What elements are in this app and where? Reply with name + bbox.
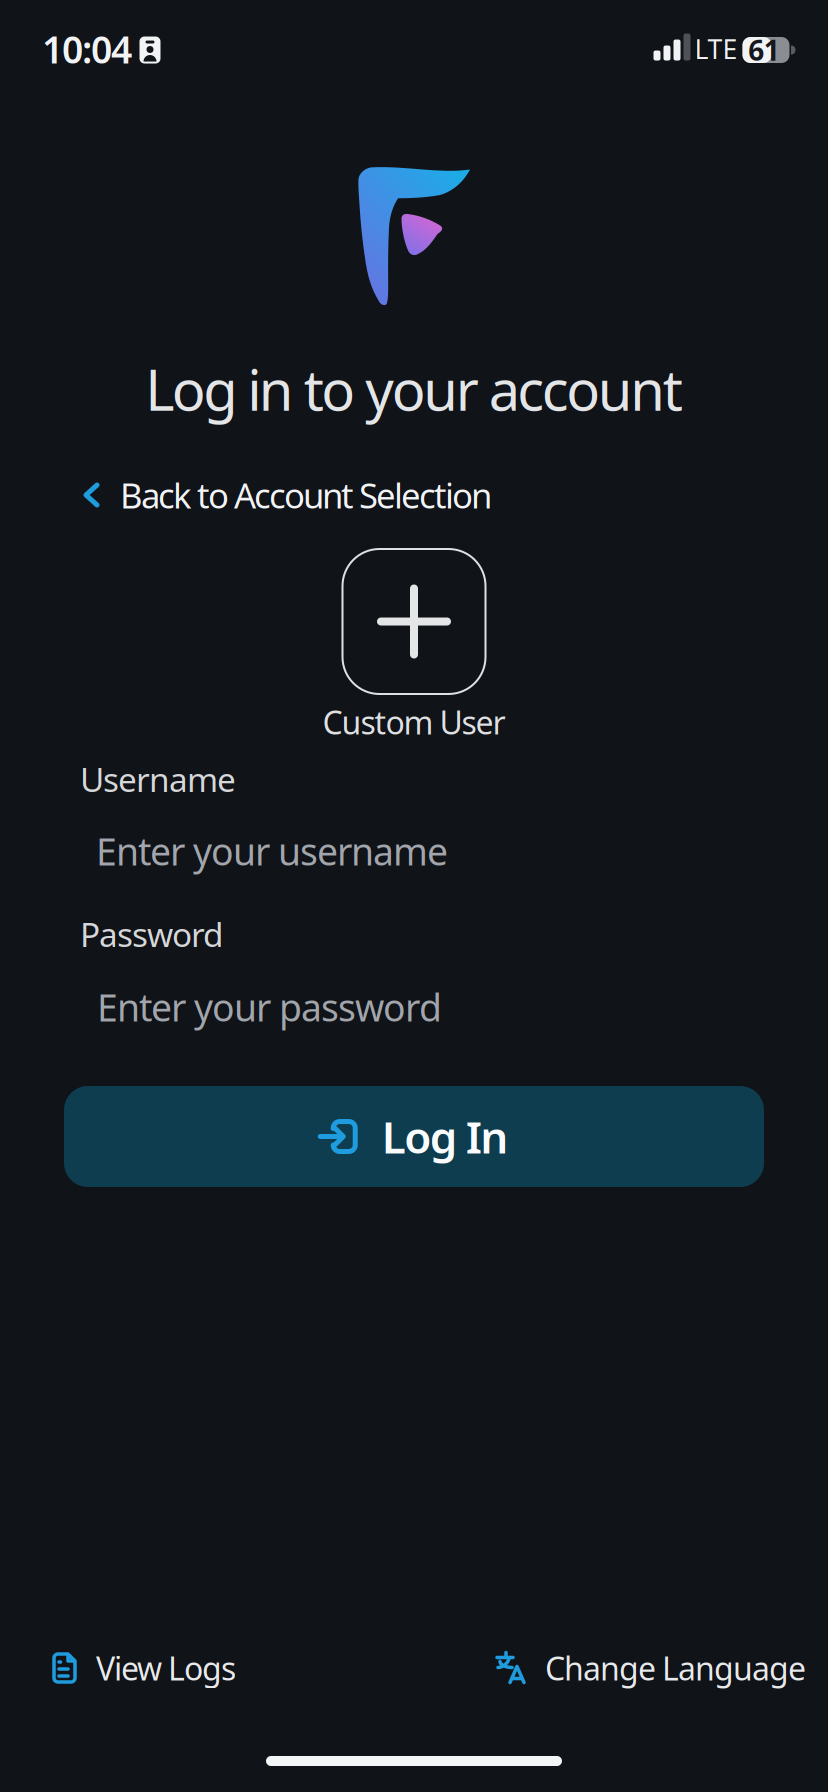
button[interactable]: Log In	[64, 1086, 764, 1187]
staticText: Log in to your account	[145, 352, 683, 426]
staticText: Back to Account Selection	[120, 472, 492, 518]
staticText: 10:04	[42, 24, 132, 74]
button[interactable]: Back to Account Selection	[83, 472, 530, 518]
staticText: 61	[748, 31, 780, 69]
button[interactable]: View Logs	[52, 1647, 296, 1689]
button[interactable]: Change Language	[496, 1647, 825, 1689]
staticText: View Logs	[96, 1647, 236, 1689]
staticText: Enter your password	[97, 982, 442, 1032]
button[interactable]: Username	[96, 826, 736, 876]
staticText: Password	[80, 912, 224, 956]
staticText: Enter your username	[96, 826, 448, 876]
staticText: Change Language	[545, 1647, 806, 1689]
staticText: Username	[80, 757, 236, 801]
button[interactable]: Password	[97, 982, 737, 1032]
button[interactable]: Custom User	[342, 549, 485, 694]
staticText: Log In	[382, 1107, 508, 1166]
staticText: Custom User	[322, 701, 505, 743]
staticText: LTE	[694, 31, 737, 67]
